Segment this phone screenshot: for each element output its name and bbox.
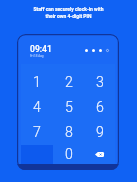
staticText: 0 [65,146,73,163]
button[interactable]: 4 [21,95,53,120]
button[interactable]: 7 [21,120,53,145]
staticText: 6 [96,99,104,116]
staticText: 2 [65,74,73,91]
staticText: Staff can securely clock-in with their o… [33,6,104,20]
staticText: 7 [33,124,41,141]
button[interactable]: 8 [53,120,84,145]
staticText: 3 [96,74,104,91]
button[interactable]: 0 [53,145,84,164]
button[interactable]: 6 [84,95,115,120]
button[interactable]: 2 [53,70,84,95]
staticText: Fri 18 Aug [30,54,44,58]
staticText: 5 [65,99,73,116]
staticText: 1 [33,74,41,91]
button[interactable]: 5 [53,95,84,120]
button[interactable]: 3 [84,70,115,95]
staticText: 09:41 [30,44,52,54]
staticText: 4 [33,99,41,116]
button[interactable]: Backspace [84,145,115,164]
staticText: 9 [96,124,104,141]
button[interactable]: 1 [21,70,53,95]
other: Backspace [95,152,104,157]
button[interactable]: 9 [84,120,115,145]
staticText: 8 [65,124,73,141]
